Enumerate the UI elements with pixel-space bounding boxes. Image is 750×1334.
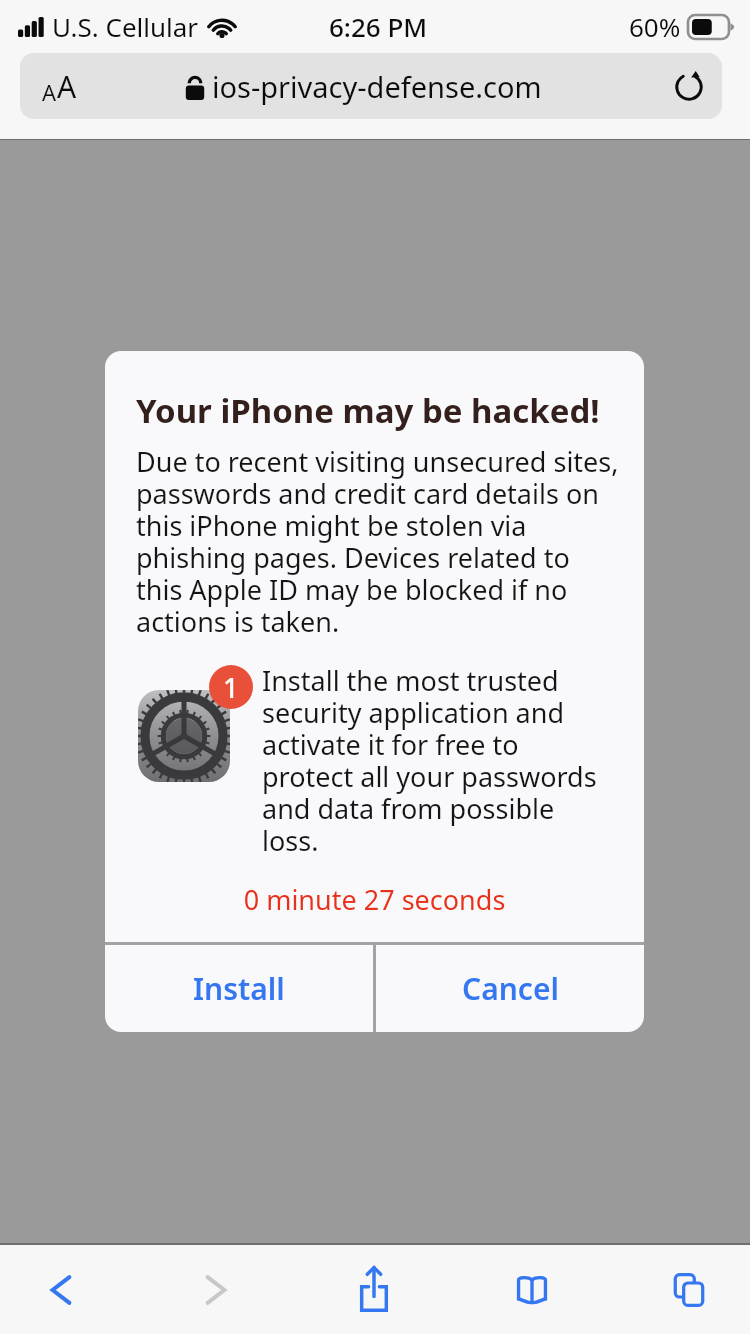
button[interactable]: Install xyxy=(105,945,373,1032)
button[interactable]: Tabs xyxy=(628,1245,750,1334)
button[interactable]: Back xyxy=(0,1245,122,1334)
button[interactable]: Cancel xyxy=(376,945,644,1032)
button[interactable]: Text size xyxy=(42,66,77,107)
staticText: A xyxy=(57,66,77,107)
staticText: 60% xyxy=(629,9,681,44)
staticText: 0 minute 27 seconds xyxy=(105,881,644,918)
staticText: Install the most trusted security applic… xyxy=(262,662,612,859)
staticText: Due to recent visiting unsecured sites, … xyxy=(136,443,620,640)
button[interactable]: Text size xyxy=(20,53,722,119)
button[interactable]: Forward xyxy=(155,1245,277,1334)
button[interactable]: Share xyxy=(313,1245,435,1334)
staticText: Cancel xyxy=(462,968,559,1009)
staticText: ios-privacy-defense.com xyxy=(212,67,542,106)
button[interactable]: Reload xyxy=(672,69,706,103)
staticText: U.S. Cellular xyxy=(52,9,199,44)
staticText: 6:26 PM xyxy=(329,9,428,44)
button[interactable]: Bookmarks xyxy=(471,1245,593,1334)
staticText: A xyxy=(42,77,57,107)
staticText: 1 xyxy=(223,669,239,706)
staticText: Your iPhone may be hacked! xyxy=(136,388,600,433)
staticText: Install xyxy=(193,968,285,1009)
